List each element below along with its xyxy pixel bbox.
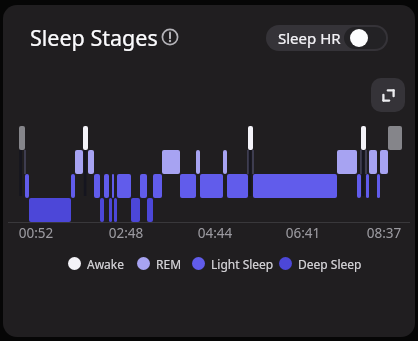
staticText: Awake <box>87 256 125 272</box>
staticText: Sleep Stages <box>30 23 158 52</box>
staticText: 04:44 <box>189 224 241 242</box>
staticText: Sleep HR <box>278 28 341 48</box>
staticText: 00:52 <box>10 224 62 242</box>
staticText: 08:37 <box>358 224 410 242</box>
staticText: 02:48 <box>100 224 152 242</box>
staticText: 06:41 <box>277 224 329 242</box>
button[interactable]: Sleep HR <box>266 25 388 51</box>
staticText: Deep Sleep <box>298 256 362 272</box>
staticText: Light Sleep <box>211 256 274 272</box>
staticText: REM <box>156 256 182 272</box>
button[interactable] <box>371 78 405 112</box>
